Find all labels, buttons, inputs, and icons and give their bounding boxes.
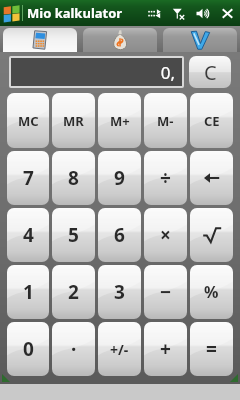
staticText: CE bbox=[204, 112, 220, 130]
staticText: 2 bbox=[68, 279, 79, 305]
button[interactable]: MC bbox=[7, 93, 49, 148]
button[interactable]: M+ bbox=[98, 93, 141, 148]
button[interactable]: CE bbox=[190, 93, 233, 148]
button[interactable]: 7 bbox=[7, 151, 49, 205]
button[interactable]: M- bbox=[144, 93, 187, 148]
button[interactable]: Converter bbox=[163, 28, 237, 52]
button[interactable]: C bbox=[189, 56, 231, 88]
button[interactable]: Display bbox=[11, 58, 182, 86]
button[interactable]: 2 bbox=[52, 265, 95, 319]
button[interactable]: 4 bbox=[7, 208, 49, 262]
staticText: 7 bbox=[23, 165, 34, 191]
button[interactable]: Signal off bbox=[171, 6, 186, 21]
button[interactable]: +/- bbox=[98, 322, 141, 376]
staticText: − bbox=[160, 279, 172, 305]
button[interactable]: MR bbox=[52, 93, 95, 148]
staticText: 6 bbox=[114, 222, 125, 248]
button[interactable]: Square root bbox=[190, 208, 233, 262]
staticText: C bbox=[204, 59, 217, 86]
button[interactable]: Calculator bbox=[3, 28, 77, 52]
staticText: · bbox=[71, 336, 77, 362]
button[interactable]: % bbox=[190, 265, 233, 319]
button[interactable]: Volume bbox=[195, 6, 210, 21]
button[interactable]: 0 bbox=[7, 322, 49, 376]
staticText: MC bbox=[18, 112, 39, 130]
button[interactable]: 9 bbox=[98, 151, 141, 205]
button[interactable]: · bbox=[52, 322, 95, 376]
staticText: +/- bbox=[110, 340, 129, 359]
button[interactable]: 1 bbox=[7, 265, 49, 319]
button[interactable]: Start bbox=[3, 4, 21, 22]
staticText: ÷ bbox=[160, 165, 171, 191]
button[interactable]: Close bbox=[220, 6, 235, 21]
staticText: 0 bbox=[23, 336, 34, 362]
staticText: MR bbox=[63, 112, 84, 130]
staticText: Mio kalkulator bbox=[27, 4, 123, 22]
button[interactable]: Connectivity bbox=[147, 6, 162, 21]
button[interactable]: 6 bbox=[98, 208, 141, 262]
staticText: 3 bbox=[114, 279, 125, 305]
staticText: % bbox=[204, 281, 219, 303]
button[interactable]: Currency bbox=[83, 28, 157, 52]
staticText: 0, bbox=[160, 61, 175, 84]
button[interactable]: − bbox=[144, 265, 187, 319]
staticText: 8 bbox=[68, 165, 79, 191]
button[interactable]: + bbox=[144, 322, 187, 376]
button[interactable]: Backspace bbox=[190, 151, 233, 205]
staticText: × bbox=[160, 222, 171, 248]
button[interactable]: ÷ bbox=[144, 151, 187, 205]
button[interactable]: 8 bbox=[52, 151, 95, 205]
staticText: 1 bbox=[23, 279, 34, 305]
staticText: M+ bbox=[110, 112, 130, 130]
button[interactable]: × bbox=[144, 208, 187, 262]
staticText: = bbox=[206, 336, 217, 362]
staticText: 4 bbox=[23, 222, 34, 248]
staticText: M- bbox=[157, 112, 174, 130]
button[interactable]: = bbox=[190, 322, 233, 376]
staticText: 5 bbox=[68, 222, 79, 248]
staticText: 9 bbox=[114, 165, 125, 191]
staticText: + bbox=[160, 336, 171, 362]
button[interactable]: 5 bbox=[52, 208, 95, 262]
button[interactable]: 3 bbox=[98, 265, 141, 319]
